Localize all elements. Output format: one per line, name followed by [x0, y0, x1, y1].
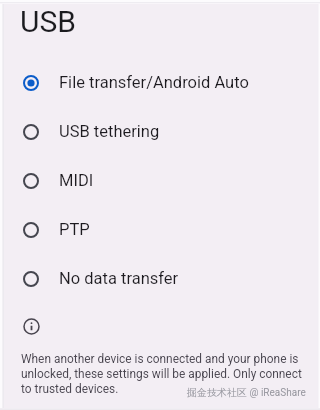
button[interactable]: MIDI — [0, 156, 320, 205]
staticText: MIDI — [59, 171, 94, 190]
button[interactable]: More information — [23, 318, 40, 335]
button[interactable]: USB tethering — [0, 107, 320, 156]
button[interactable]: File transfer/Android Auto — [0, 58, 320, 107]
button[interactable]: No data transfer — [0, 254, 320, 303]
staticText: No data transfer — [59, 269, 179, 288]
button[interactable]: PTP — [0, 205, 320, 254]
staticText: 掘金技术社区 @ iReaShare — [187, 386, 306, 399]
staticText: USB — [20, 4, 76, 39]
staticText: USB tethering — [59, 122, 160, 141]
staticText: File transfer/Android Auto — [59, 73, 249, 92]
staticText: PTP — [59, 220, 90, 239]
staticText: When another device is connected and you… — [21, 352, 307, 396]
